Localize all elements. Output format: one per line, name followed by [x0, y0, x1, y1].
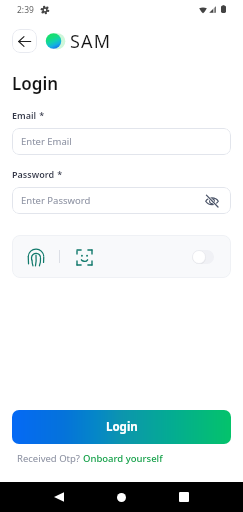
- button[interactable]: Face login: [75, 248, 93, 266]
- button[interactable]: Enable biometric login: [192, 250, 214, 264]
- button[interactable]: Login: [12, 410, 231, 444]
- button[interactable]: Back: [12, 29, 37, 53]
- staticText: Password: [12, 168, 55, 180]
- button[interactable]: Fingerprint login: [27, 248, 45, 266]
- button[interactable]: Recents: [171, 482, 197, 512]
- button[interactable]: Enter Password: [12, 187, 231, 214]
- button[interactable]: Show password: [205, 194, 219, 208]
- staticText: *: [55, 168, 63, 180]
- button[interactable]: Onboard yourself: [83, 452, 163, 465]
- button[interactable]: Back: [46, 482, 72, 512]
- staticText: *: [37, 109, 45, 121]
- staticText: Login: [106, 419, 138, 435]
- staticText: Login: [12, 72, 59, 95]
- staticText: 2:39: [17, 4, 34, 16]
- staticText: Email: [12, 109, 37, 121]
- staticText: Enter Password: [21, 194, 91, 207]
- other: Settings: [41, 6, 49, 14]
- staticText: Enter Email: [21, 135, 72, 148]
- staticText: SAM: [70, 29, 112, 53]
- staticText: Received Otp?: [17, 452, 83, 465]
- button[interactable]: Home: [108, 482, 134, 512]
- button[interactable]: Enter Email: [12, 128, 231, 155]
